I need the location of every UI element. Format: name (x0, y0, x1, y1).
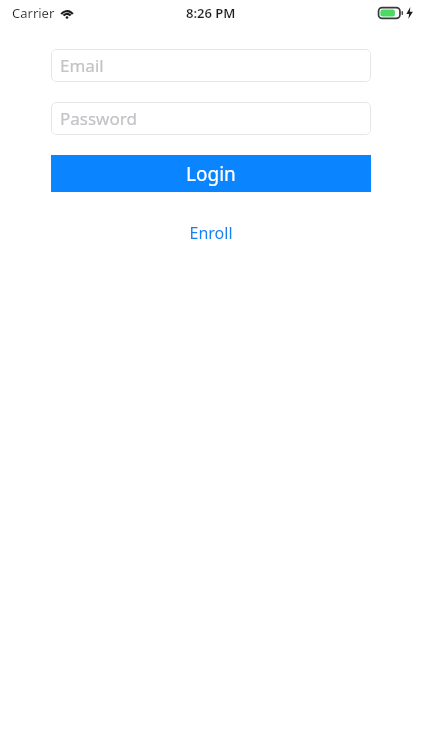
button[interactable]: Email (51, 49, 371, 82)
staticText: Enroll (189, 222, 233, 244)
other: Charging (406, 7, 413, 19)
staticText: Email (60, 54, 104, 77)
staticText: Password (60, 107, 137, 130)
staticText: Carrier (12, 4, 55, 22)
button[interactable]: Login (51, 155, 371, 192)
button[interactable]: Password (51, 102, 371, 135)
staticText: Login (186, 161, 236, 187)
button[interactable]: Enroll (175, 218, 247, 248)
staticText: 8:26 PM (186, 4, 236, 22)
